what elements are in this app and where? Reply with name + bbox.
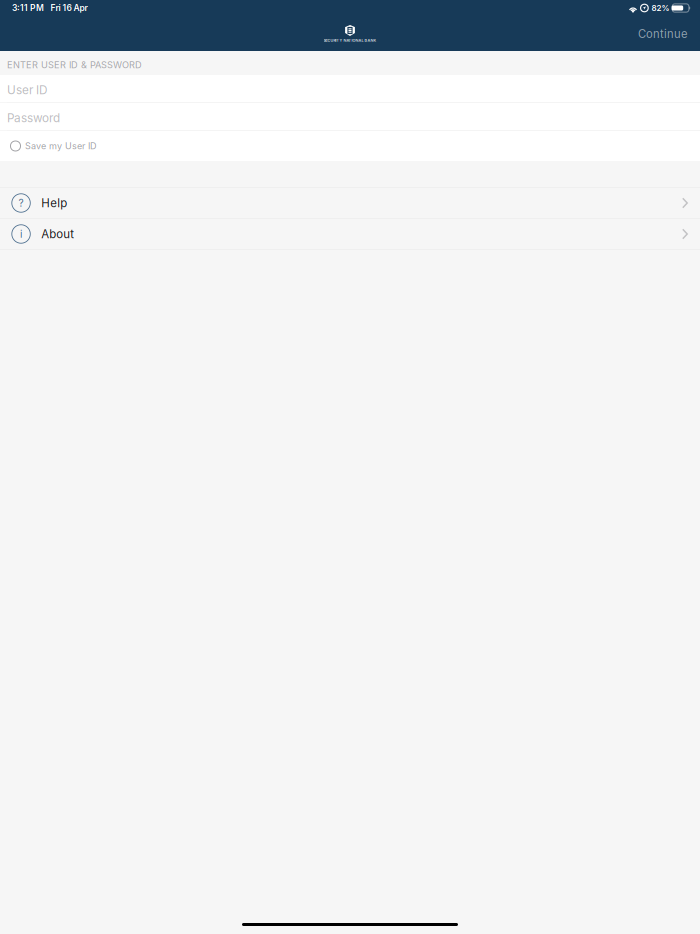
- button[interactable]: Save my User ID: [0, 131, 700, 161]
- staticText: Continue: [638, 27, 688, 41]
- staticText: ?: [19, 197, 24, 209]
- staticText: ENTER USER ID & PASSWORD: [7, 59, 142, 70]
- staticText: About: [41, 227, 74, 241]
- staticText: Help: [41, 196, 67, 210]
- staticText: 3:11 PM: [12, 3, 44, 13]
- button[interactable]: ?: [0, 188, 700, 218]
- staticText: i: [20, 228, 22, 240]
- staticText: 82%: [652, 3, 670, 13]
- button[interactable]: Continue: [626, 23, 700, 45]
- staticText: Fri 16 Apr: [50, 3, 87, 13]
- staticText: Password: [7, 111, 60, 125]
- staticText: Save my User ID: [25, 140, 97, 151]
- button[interactable]: i: [0, 219, 700, 249]
- staticText: User ID: [7, 83, 47, 97]
- button[interactable]: Password: [0, 103, 700, 130]
- staticText: SECURITY NATIONAL BANK: [323, 38, 376, 43]
- button[interactable]: User ID: [0, 75, 700, 102]
